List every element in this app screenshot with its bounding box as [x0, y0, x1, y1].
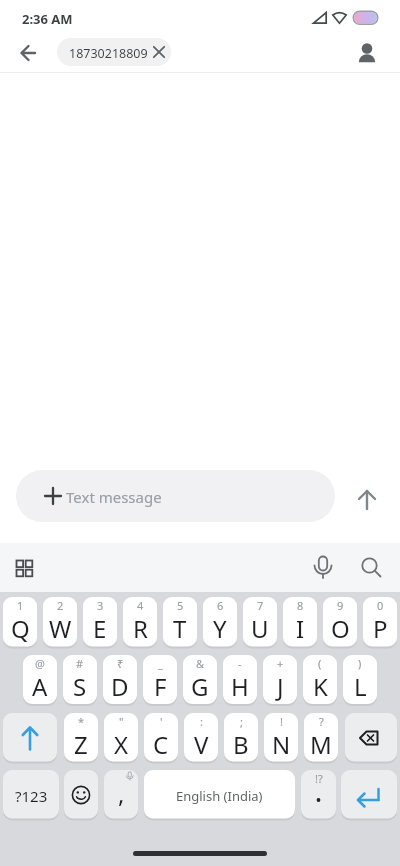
staticText: '	[160, 714, 163, 729]
staticText: *	[78, 714, 85, 729]
button[interactable]: 0	[363, 597, 397, 648]
staticText: Text message	[66, 487, 162, 507]
staticText: (	[318, 656, 322, 671]
button[interactable]: _	[143, 655, 177, 706]
staticText: G	[191, 670, 209, 703]
staticText: "	[119, 714, 124, 729]
staticText: R	[133, 612, 148, 645]
staticText: Y	[213, 612, 227, 645]
button[interactable]: +	[263, 655, 297, 706]
button[interactable]: (	[303, 655, 337, 706]
button[interactable]: English (India)	[144, 770, 295, 820]
staticText: -	[238, 656, 242, 671]
button[interactable]: ?	[304, 713, 338, 763]
button[interactable]: ;	[224, 713, 258, 763]
staticText: 18730218809	[69, 45, 148, 62]
staticText: X	[114, 728, 129, 761]
staticText: ,	[118, 777, 125, 810]
button[interactable]: 3	[83, 597, 117, 648]
button[interactable]: '	[144, 713, 178, 763]
staticText: :	[200, 714, 203, 729]
button[interactable]: Text message	[16, 470, 335, 522]
staticText: ₹	[117, 656, 124, 671]
staticText: &	[196, 656, 205, 671]
button[interactable]: "	[104, 713, 138, 763]
staticText: S	[73, 670, 87, 703]
button[interactable]	[341, 770, 397, 820]
staticText: #	[76, 656, 84, 671]
button[interactable]: ₹	[103, 655, 137, 706]
staticText: N	[272, 728, 291, 761]
staticText: 9	[337, 598, 344, 613]
staticText: O	[331, 612, 350, 645]
button[interactable]	[12, 37, 44, 69]
staticText: B	[233, 728, 249, 761]
staticText: A	[32, 670, 48, 703]
staticText: +	[277, 656, 284, 671]
staticText: Q	[11, 612, 30, 645]
staticText: )	[358, 656, 362, 671]
staticText: _	[158, 656, 163, 671]
button[interactable]: ,	[104, 770, 138, 820]
button[interactable]: 2	[43, 597, 77, 648]
staticText: W	[49, 612, 72, 645]
staticText: I	[296, 612, 305, 645]
staticText: 2	[57, 598, 64, 613]
staticText: D	[111, 670, 129, 703]
staticText: 2:36 AM	[22, 10, 73, 28]
staticText: V	[194, 728, 209, 761]
staticText: Z	[74, 728, 88, 761]
button[interactable]: &	[183, 655, 217, 706]
staticText: K	[313, 670, 328, 703]
button[interactable]: !?	[301, 770, 336, 820]
button[interactable]	[309, 553, 337, 581]
staticText: ?	[319, 714, 324, 729]
button[interactable]: 8	[283, 597, 317, 648]
staticText: T	[173, 612, 187, 645]
staticText: E	[93, 612, 107, 645]
button[interactable]: @	[23, 655, 57, 706]
staticText: U	[251, 612, 269, 645]
staticText: 7	[257, 598, 264, 613]
button[interactable]: 6	[203, 597, 237, 648]
button[interactable]	[64, 770, 98, 820]
staticText: !	[280, 714, 283, 729]
staticText: F	[154, 670, 167, 703]
button[interactable]: 5	[163, 597, 197, 648]
button[interactable]: 1	[3, 597, 37, 648]
staticText: !?	[315, 771, 323, 786]
button[interactable]	[345, 713, 397, 763]
staticText: P	[373, 612, 388, 645]
staticText: English (India)	[176, 787, 263, 805]
button[interactable]: 4	[123, 597, 157, 648]
button[interactable]	[351, 482, 383, 514]
button[interactable]: !	[264, 713, 298, 763]
button[interactable]: )	[343, 655, 377, 706]
button[interactable]: ?123	[3, 770, 59, 820]
button[interactable]	[353, 38, 381, 66]
button[interactable]: *	[64, 713, 98, 763]
staticText: C	[153, 728, 169, 761]
staticText: @	[35, 656, 45, 671]
button[interactable]	[3, 713, 57, 763]
staticText: ?123	[15, 786, 48, 806]
button[interactable]	[10, 555, 38, 583]
staticText: M	[310, 728, 332, 761]
staticText: H	[231, 670, 249, 703]
staticText: 3	[97, 598, 104, 613]
staticText: 4	[137, 598, 144, 613]
staticText: ;	[240, 714, 243, 729]
staticText: 8	[297, 598, 304, 613]
staticText: 1	[17, 598, 24, 613]
staticText: 0	[377, 598, 384, 613]
staticText: J	[277, 670, 284, 703]
button[interactable]: #	[63, 655, 97, 706]
button[interactable]	[357, 553, 385, 581]
button[interactable]: :	[184, 713, 218, 763]
button[interactable]: -	[223, 655, 257, 706]
button[interactable]: 7	[243, 597, 277, 648]
staticText: 6	[217, 598, 224, 613]
button[interactable]: 18730218809	[57, 38, 171, 66]
staticText: 5	[177, 598, 184, 613]
button[interactable]: 9	[323, 597, 357, 648]
